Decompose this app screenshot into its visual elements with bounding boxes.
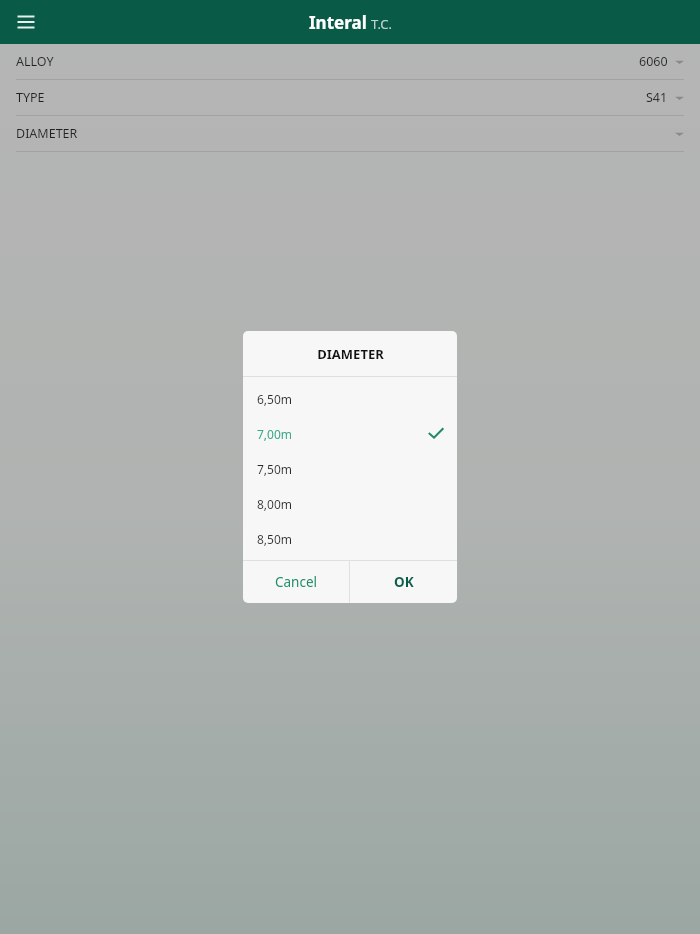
staticText: ALLOY <box>16 53 54 70</box>
staticText: 8,50m <box>257 531 293 547</box>
staticText: TYPE <box>16 89 45 106</box>
staticText: DIAMETER <box>16 125 78 142</box>
staticText: S41 <box>646 89 668 106</box>
staticText: Interal <box>309 11 367 34</box>
button[interactable]: OK <box>350 561 457 603</box>
staticText: 7,50m <box>257 461 293 477</box>
staticText: 6,50m <box>257 391 293 407</box>
button[interactable]: 6,50m <box>243 381 457 416</box>
staticText: OK <box>394 573 414 591</box>
button[interactable]: 7,50m <box>243 451 457 486</box>
button[interactable]: DIAMETER <box>0 116 700 151</box>
button[interactable]: 8,50m <box>243 521 457 556</box>
button[interactable]: 8,00m <box>243 486 457 521</box>
staticText: T.C. <box>371 15 392 33</box>
staticText: Cancel <box>275 573 318 591</box>
staticText: DIAMETER <box>317 345 384 363</box>
button[interactable]: Open navigation menu <box>12 8 40 36</box>
staticText: 6060 <box>639 53 668 70</box>
button[interactable]: ALLOY <box>0 44 700 79</box>
button[interactable]: TYPE <box>0 80 700 115</box>
staticText: 8,00m <box>257 496 293 512</box>
button[interactable]: 7,00m <box>243 416 457 451</box>
staticText: 7,00m <box>257 426 293 442</box>
button[interactable]: Cancel <box>243 561 349 603</box>
